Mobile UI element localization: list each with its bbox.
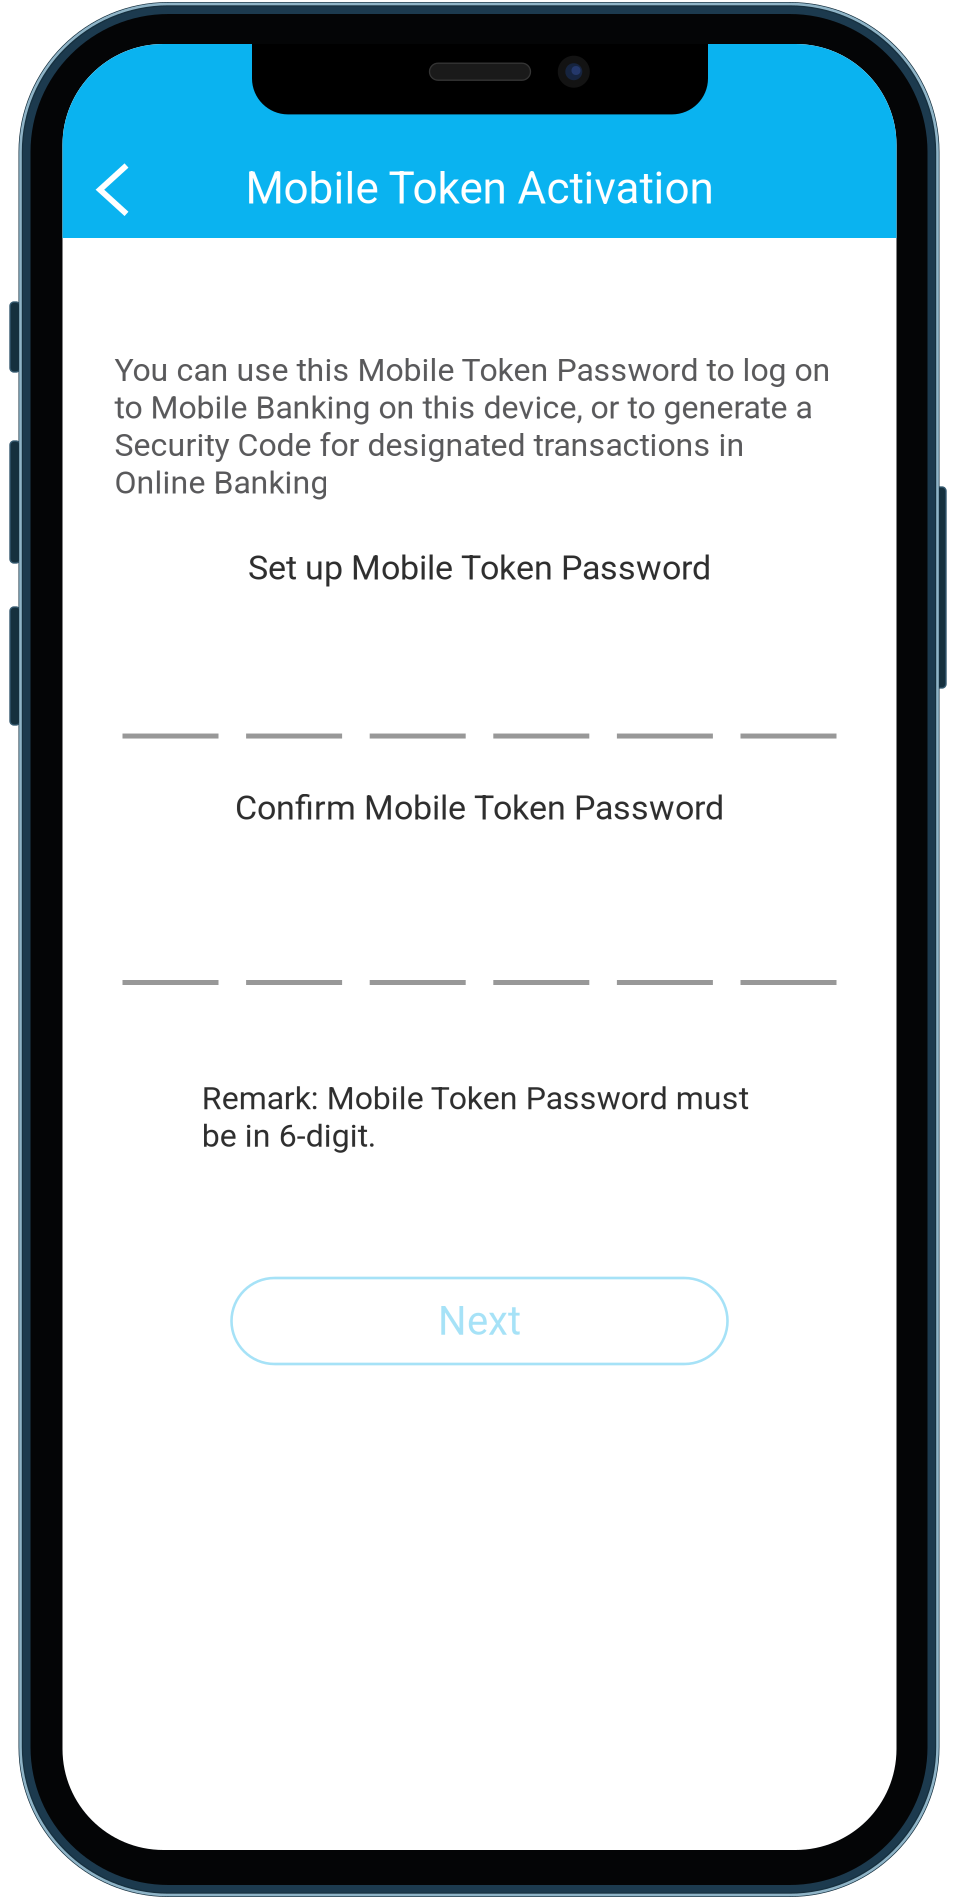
button[interactable]: Next bbox=[231, 1278, 727, 1364]
button[interactable]: Confirm Mobile Token Password digit 4 bbox=[493, 925, 589, 985]
button[interactable]: Confirm Mobile Token Password digit 5 bbox=[617, 925, 713, 985]
button[interactable]: Confirm Mobile Token Password digit 3 bbox=[370, 925, 466, 985]
button[interactable]: Mobile Token Password digit 2 bbox=[246, 678, 342, 738]
button[interactable]: Mobile Token Password digit 4 bbox=[493, 678, 589, 738]
button[interactable]: Confirm Mobile Token Password digit 2 bbox=[246, 925, 342, 985]
button[interactable]: Confirm Mobile Token Password digit 6 bbox=[740, 925, 836, 985]
button[interactable]: Mobile Token Password digit 3 bbox=[370, 678, 466, 738]
button[interactable]: Mobile Token Password digit 1 bbox=[122, 678, 218, 738]
button[interactable]: Mobile Token Password digit 6 bbox=[740, 678, 836, 738]
button[interactable]: Confirm Mobile Token Password digit 1 bbox=[122, 925, 218, 985]
staticText: Next bbox=[438, 1298, 521, 1344]
button[interactable]: Mobile Token Password digit 5 bbox=[617, 678, 713, 738]
staticText: Remark: Mobile Token Password must be in… bbox=[202, 1079, 749, 1154]
staticText: Confirm Mobile Token Password bbox=[235, 788, 724, 828]
staticText: Set up Mobile Token Password bbox=[248, 548, 711, 588]
staticText: You can use this Mobile Token Password t… bbox=[114, 351, 830, 501]
staticText: Mobile Token Activation bbox=[245, 163, 713, 214]
button[interactable]: Back bbox=[63, 140, 163, 240]
